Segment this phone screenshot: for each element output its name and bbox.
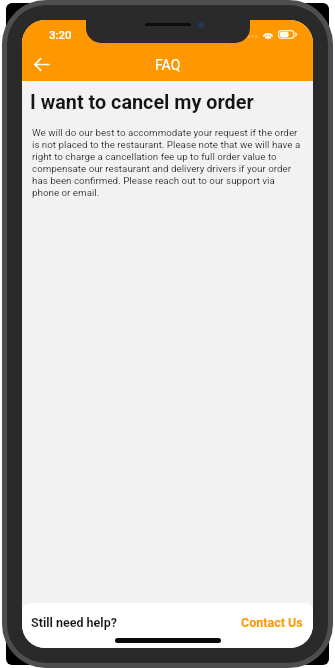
staticText: We will do our best to accommodate your … <box>32 127 301 199</box>
staticText: FAQ <box>155 57 181 73</box>
staticText: I want to cancel my order <box>30 91 254 114</box>
button[interactable]: Back <box>25 48 58 81</box>
staticText: Contact Us <box>241 615 303 630</box>
staticText: Still need help? <box>31 615 117 630</box>
staticText: 3:20 <box>49 28 72 41</box>
button[interactable]: Still need help? <box>31 615 117 630</box>
button[interactable]: Contact Us <box>241 615 303 630</box>
